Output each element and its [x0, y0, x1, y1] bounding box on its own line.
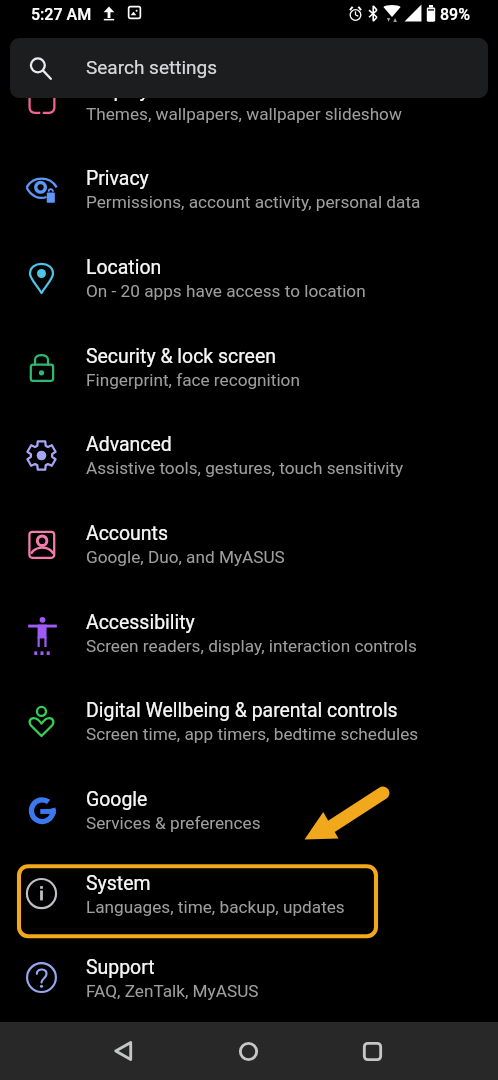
- staticText: Themes, wallpapers, wallpaper slideshow: [86, 104, 402, 124]
- button[interactable]: Digital Wellbeing & parental controls: [0, 677, 498, 766]
- button[interactable]: System: [0, 850, 498, 939]
- staticText: 5:27 AM: [31, 5, 92, 24]
- staticText: System: [86, 872, 151, 895]
- staticText: Accounts: [86, 522, 168, 545]
- staticText: Languages, time, backup, updates: [86, 897, 345, 917]
- button[interactable]: Display: [0, 57, 498, 146]
- staticText: FAQ, ZenTalk, MyASUS: [86, 981, 259, 1001]
- staticText: Services & preferences: [86, 813, 261, 833]
- staticText: Google, Duo, and MyASUS: [86, 547, 285, 567]
- staticText: 89%: [440, 5, 470, 24]
- staticText: Assistive tools, gestures, touch sensiti…: [86, 458, 404, 478]
- button[interactable]: Back: [61, 1022, 186, 1080]
- staticText: Search settings: [86, 56, 217, 78]
- staticText: Advanced: [86, 433, 172, 456]
- staticText: On - 20 apps have access to location: [86, 281, 366, 301]
- staticText: Location: [86, 256, 162, 279]
- staticText: Display: [86, 79, 149, 102]
- button[interactable]: Accessibility: [0, 589, 498, 678]
- staticText: Digital Wellbeing & parental controls: [86, 699, 398, 722]
- button[interactable]: Support: [0, 934, 498, 1022]
- staticText: Fingerprint, face recognition: [86, 370, 300, 390]
- staticText: Privacy: [86, 167, 149, 190]
- staticText: Accessibility: [86, 611, 195, 634]
- button[interactable]: Location: [0, 234, 498, 323]
- staticText: Permissions, account activity, personal …: [86, 192, 421, 212]
- button[interactable]: Accounts: [0, 500, 498, 589]
- button[interactable]: Search settings: [10, 38, 488, 98]
- staticText: Screen time, app timers, bedtime schedul…: [86, 724, 419, 744]
- staticText: Screen readers, display, interaction con…: [86, 636, 417, 656]
- button[interactable]: Google: [0, 766, 498, 855]
- button[interactable]: Advanced: [0, 411, 498, 500]
- button[interactable]: Recent apps: [310, 1022, 435, 1080]
- staticText: Google: [86, 788, 148, 811]
- staticText: Security & lock screen: [86, 345, 276, 368]
- staticText: Support: [86, 956, 155, 979]
- button[interactable]: Security & lock screen: [0, 323, 498, 412]
- button[interactable]: Privacy: [0, 145, 498, 234]
- button[interactable]: Home: [186, 1022, 311, 1080]
